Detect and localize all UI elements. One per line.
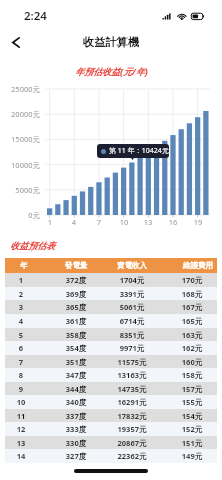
staticText: 152元 [152,424,222,434]
button[interactable] [5,273,217,287]
staticText: 333度 [36,424,116,434]
staticText: 25000元 [0,84,40,94]
staticText: 8 [0,370,61,380]
staticText: 1 [40,217,60,227]
staticText: 19 [188,217,208,227]
staticText: 365度 [36,302,116,312]
staticText: 20000元 [0,109,40,119]
staticText: 361度 [36,316,116,326]
staticText: 327度 [36,451,116,461]
staticText: 6714元 [92,316,172,326]
staticText: 358度 [36,330,116,340]
staticText: 年預估收益(元/年) [75,65,148,77]
staticText: 347度 [36,370,116,380]
staticText: 9971元 [92,343,172,353]
button[interactable] [5,287,217,301]
staticText: 165元 [152,316,222,326]
staticText: 11 [0,411,61,421]
staticText: 167元 [152,302,222,312]
staticText: 16 [163,217,183,227]
staticText: 344度 [36,384,116,394]
staticText: 6 [0,343,61,353]
staticText: 3 [0,302,61,312]
staticText: 2:24 [24,8,47,24]
staticText: 收益計算機 [83,35,139,49]
staticText: 337度 [36,411,116,421]
staticText: 3391元 [92,289,172,299]
staticText: 14735元 [92,384,172,394]
button[interactable] [5,355,217,369]
staticText: 賣電收入 [92,261,172,270]
staticText: 8351元 [92,330,172,340]
staticText: 年 [0,261,64,270]
staticText: 16291元 [92,397,172,407]
button[interactable] [5,436,217,450]
button[interactable] [5,368,217,382]
staticText: 20867元 [92,438,172,448]
staticText: 10000元 [0,160,40,170]
staticText: 5000元 [0,185,40,195]
staticText: 19357元 [92,424,172,434]
staticText: 149元 [152,451,222,461]
staticText: 收益預估表 [10,240,55,251]
staticText: 157元 [152,384,222,394]
staticText: 17832元 [92,411,172,421]
staticText: 5 [0,330,61,340]
button[interactable] [5,382,217,396]
staticText: 13163元 [92,370,172,380]
staticText: 372度 [36,275,116,285]
staticText: 340度 [36,397,116,407]
button[interactable] [5,395,217,409]
staticText: 4 [0,316,61,326]
button[interactable] [5,409,217,423]
staticText: 10 [114,217,134,227]
staticText: 351度 [36,357,116,367]
staticText: 14 [0,451,61,461]
staticText: 5061元 [92,302,172,312]
staticText: 22362元 [92,451,172,461]
staticText: 12 [0,424,61,434]
staticText: 2 [0,289,61,299]
staticText: 13 [138,217,158,227]
button[interactable]: Back [3,30,29,55]
button[interactable] [5,422,217,436]
staticText: 168元 [152,289,222,299]
staticText: 維護費用 [158,261,222,270]
button[interactable] [5,449,217,463]
staticText: 1 [0,275,61,285]
staticText: 11575元 [92,357,172,367]
staticText: 4 [64,217,84,227]
button[interactable] [5,314,217,328]
button[interactable]: 第 11 年：10424元 [97,144,169,158]
staticText: 7 [89,217,109,227]
staticText: 162元 [152,343,222,353]
button[interactable] [5,341,217,355]
staticText: 154元 [152,411,222,421]
staticText: 發電量 [36,261,116,270]
staticText: 1704元 [92,275,172,285]
staticText: 354度 [36,343,116,353]
button[interactable] [5,258,217,273]
staticText: 151元 [152,438,222,448]
staticText: 10 [0,397,61,407]
staticText: 15000元 [0,134,40,144]
staticText: 163元 [152,330,222,340]
staticText: 7 [0,357,61,367]
staticText: 13 [0,438,61,448]
staticText: 170元 [152,275,222,285]
staticText: 330度 [36,438,116,448]
staticText: 155元 [152,397,222,407]
staticText: 0元 [0,210,40,220]
staticText: 160元 [152,357,222,367]
button[interactable] [5,328,217,342]
staticText: 第 11 年：10424元 [109,146,169,156]
staticText: 9 [0,384,61,394]
button[interactable] [5,300,217,314]
staticText: 369度 [36,289,116,299]
staticText: 158元 [152,370,222,380]
